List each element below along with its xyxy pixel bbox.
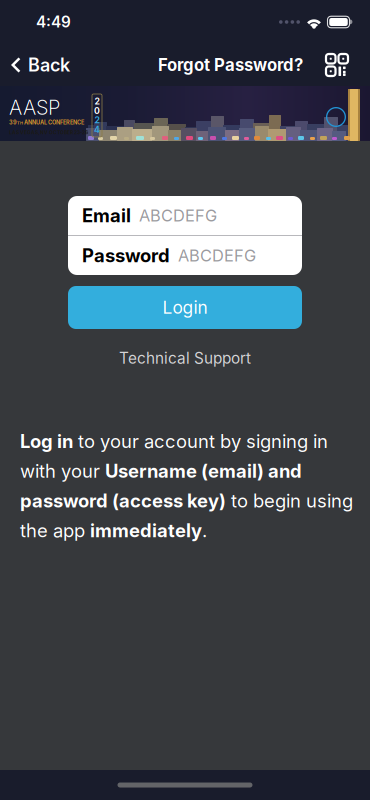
- staticText: Log in to your account by signing in wit…: [20, 431, 353, 541]
- button[interactable]: Technical Support: [113, 343, 257, 374]
- button[interactable]: Scan QR code: [318, 44, 356, 86]
- staticText: 4: [94, 124, 100, 135]
- staticText: Login: [162, 297, 207, 318]
- staticText: 4:49: [36, 13, 71, 31]
- staticText: Email: [82, 204, 131, 227]
- staticText: Forgot Password?: [158, 55, 303, 75]
- staticText: AASP: [9, 95, 60, 120]
- button[interactable]: Login: [68, 286, 302, 329]
- staticText: Back: [28, 54, 70, 76]
- staticText: Technical Support: [119, 349, 251, 368]
- staticText: 2: [94, 96, 99, 106]
- staticText: ABCDEFG: [139, 206, 217, 225]
- staticText: 0: [94, 105, 100, 116]
- staticText: 39TH ANNUAL CONFERENCE: [9, 119, 84, 126]
- staticText: Password: [82, 244, 170, 267]
- staticText: LAS VEGAS, NV OCTOBER 23-26: [9, 130, 88, 135]
- staticText: ABCDEFG: [178, 246, 256, 265]
- button[interactable]: Back: [0, 44, 78, 86]
- staticText: 2: [94, 115, 99, 125]
